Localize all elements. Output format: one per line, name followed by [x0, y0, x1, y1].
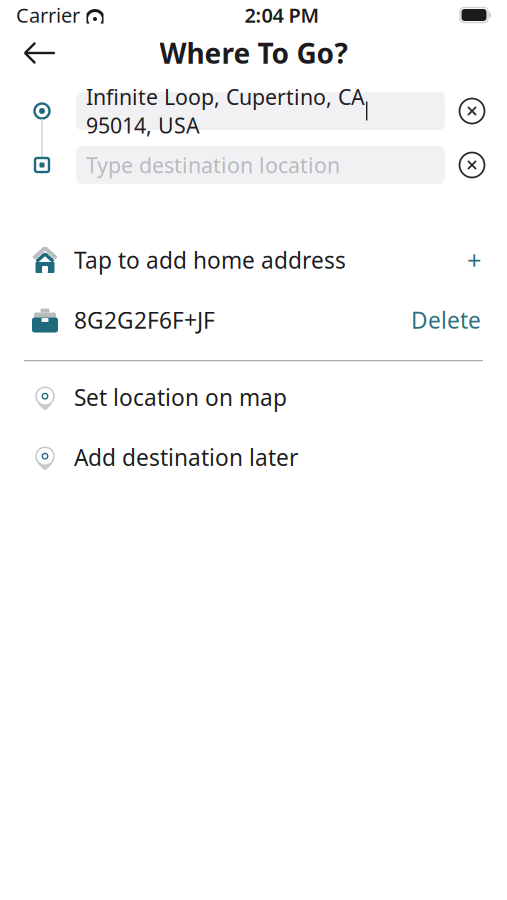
- button[interactable]: 8G2G2F6F+JF: [0, 290, 507, 350]
- staticText: 8G2G2F6F+JF: [74, 305, 215, 335]
- button[interactable]: Clear pickup location: [455, 94, 489, 128]
- button[interactable]: Add destination later: [0, 427, 507, 487]
- button[interactable]: Tap to add home address: [0, 230, 507, 290]
- staticText: Type destination location: [86, 151, 340, 179]
- staticText: Where To Go?: [159, 34, 347, 72]
- staticText: Set location on map: [74, 382, 287, 412]
- staticText: Delete: [411, 305, 481, 335]
- staticText: Tap to add home address: [74, 245, 346, 275]
- staticText: +: [467, 243, 481, 277]
- staticText: 2:04 PM: [244, 2, 319, 28]
- staticText: Add destination later: [74, 442, 298, 472]
- button[interactable]: Set location on map: [0, 367, 507, 427]
- button[interactable]: Clear destination location: [455, 148, 489, 182]
- staticText: Infinite Loop, Cupertino, CA 95014, USA: [86, 83, 365, 139]
- button[interactable]: Back: [14, 32, 66, 74]
- staticText: Carrier: [16, 2, 80, 28]
